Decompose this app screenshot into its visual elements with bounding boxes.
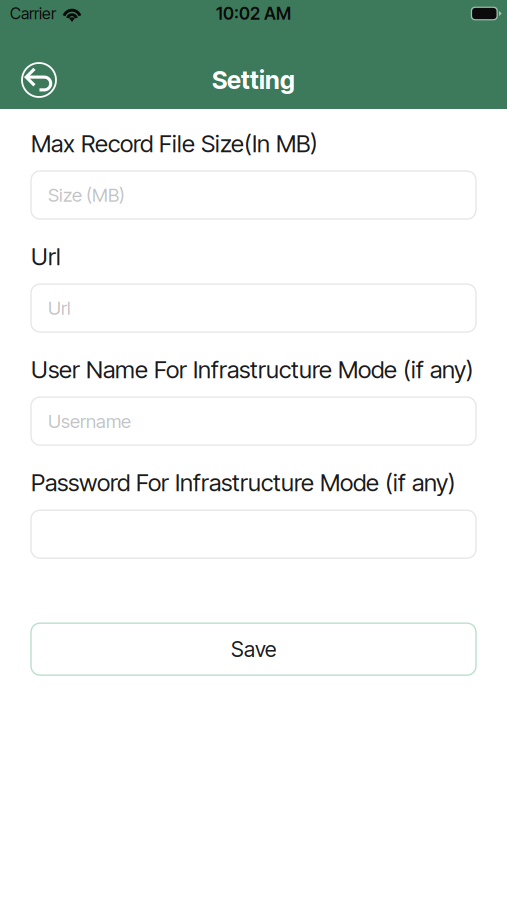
staticText: Size (MB) bbox=[48, 184, 125, 206]
button[interactable]: Back bbox=[11, 52, 67, 108]
staticText: Password For Infrastructure Mode (if any… bbox=[31, 468, 456, 497]
staticText: Url bbox=[31, 242, 61, 271]
staticText: User Name For Infrastructure Mode (if an… bbox=[31, 355, 474, 384]
button[interactable]: Save bbox=[31, 623, 476, 675]
button[interactable]: Max Record File Size(In MB) bbox=[31, 171, 476, 219]
staticText: Carrier bbox=[10, 4, 56, 23]
staticText: Setting bbox=[212, 65, 295, 95]
staticText: 10:02 AM bbox=[216, 3, 291, 24]
button[interactable]: User Name For Infrastructure Mode (if an… bbox=[31, 397, 476, 445]
button[interactable]: Password For Infrastructure Mode (if any… bbox=[31, 510, 476, 558]
staticText: Save bbox=[231, 636, 276, 662]
button[interactable]: Url bbox=[31, 284, 476, 332]
staticText: Username bbox=[48, 410, 131, 432]
staticText: Max Record File Size(In MB) bbox=[31, 129, 318, 158]
staticText: Url bbox=[48, 297, 71, 319]
